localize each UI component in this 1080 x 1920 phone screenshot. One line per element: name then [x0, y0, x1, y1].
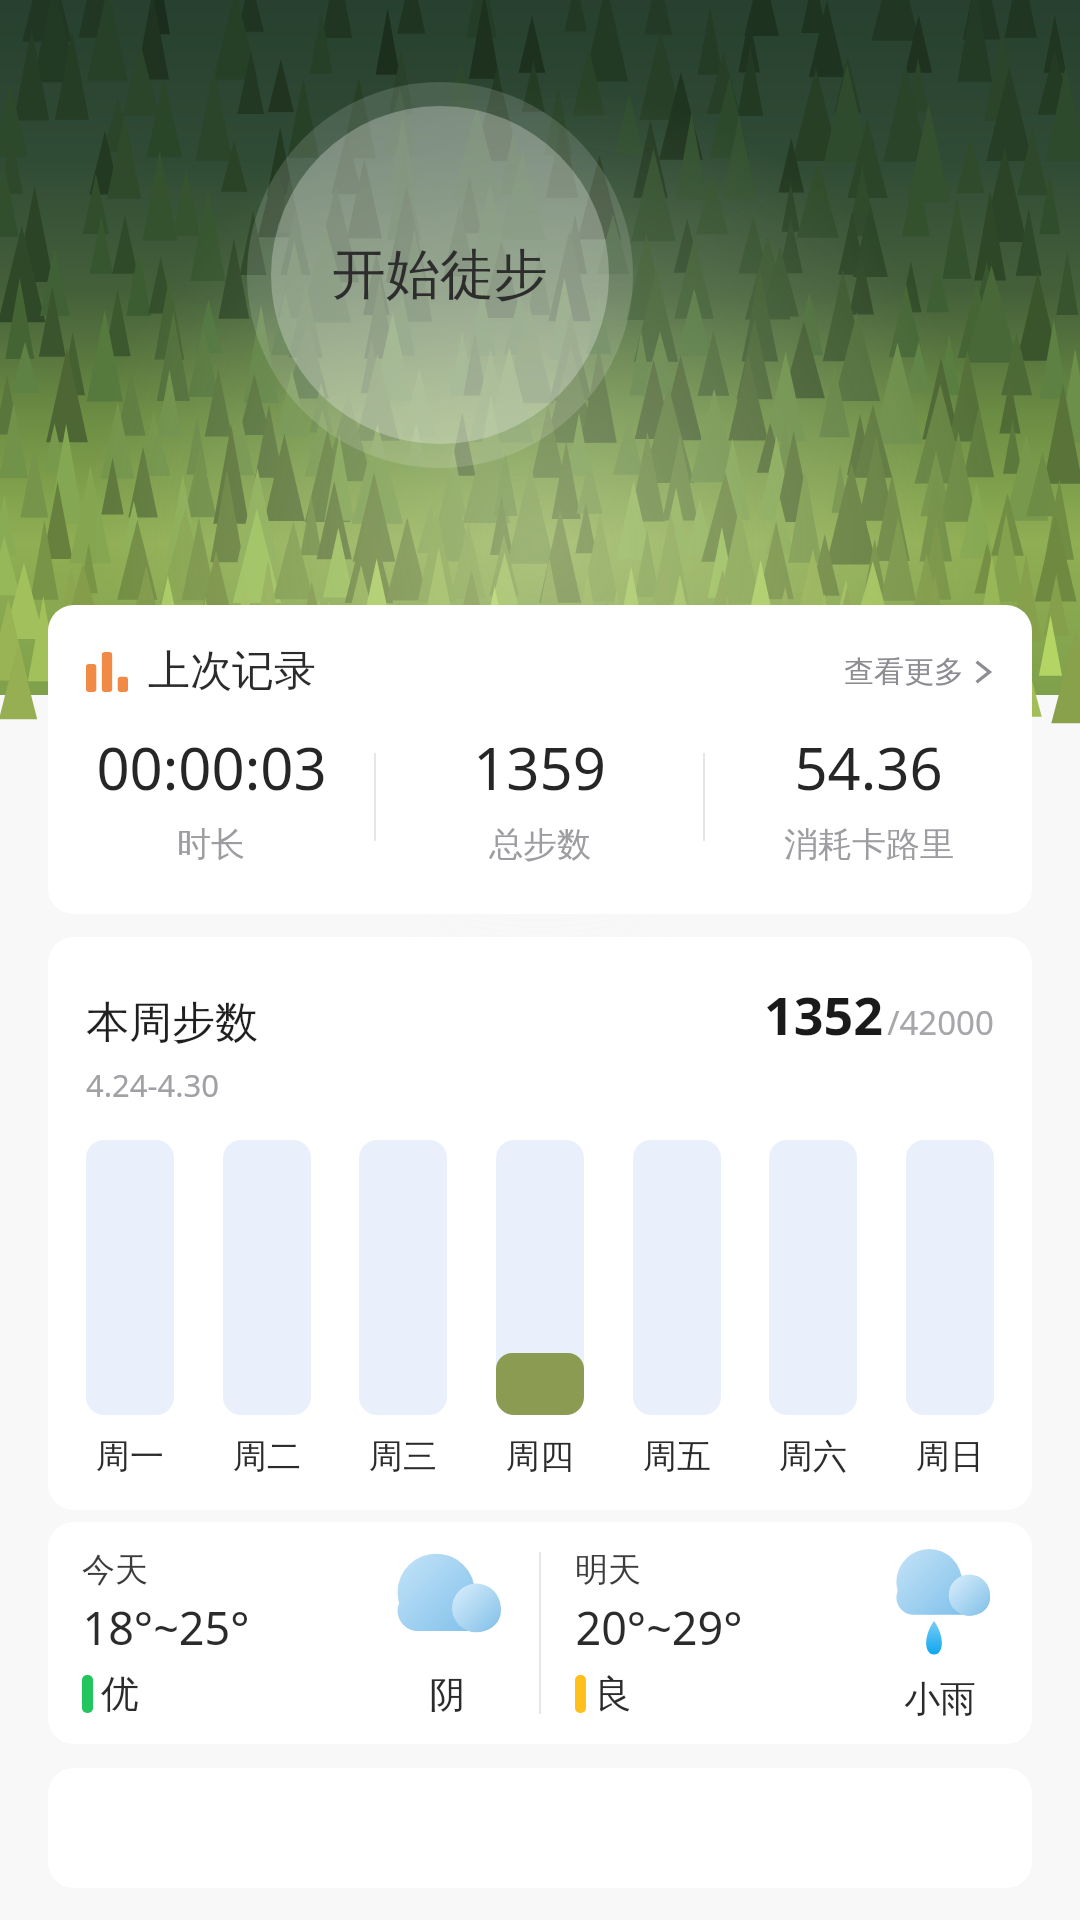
- staticText: 4.24-4.30: [86, 1064, 219, 1106]
- staticText: 20°~29°: [575, 1597, 743, 1658]
- staticText: 周日: [916, 1435, 984, 1478]
- staticText: 查看更多: [844, 653, 964, 691]
- staticText: 阴: [429, 1672, 465, 1717]
- staticText: 上次记录: [148, 645, 316, 698]
- staticText: 周六: [779, 1435, 847, 1478]
- staticText: 周三: [369, 1435, 437, 1478]
- staticText: 18°~25°: [82, 1597, 250, 1658]
- staticText: 消耗卡路里: [784, 823, 954, 866]
- staticText: 小雨: [904, 1676, 976, 1721]
- button[interactable]: 查看更多: [840, 647, 996, 697]
- staticText: /42000: [887, 1000, 994, 1045]
- staticText: 开始徒步: [332, 241, 548, 309]
- staticText: 本周步数: [86, 996, 258, 1050]
- staticText: 周二: [233, 1435, 301, 1478]
- button[interactable]: 明天: [541, 1522, 1032, 1744]
- staticText: 00:00:03: [96, 728, 327, 807]
- staticText: 今天: [82, 1549, 148, 1591]
- staticText: 54.36: [794, 728, 943, 807]
- staticText: 1359: [473, 728, 606, 807]
- staticText: 周四: [506, 1435, 574, 1478]
- staticText: 时长: [177, 823, 245, 866]
- other: 阴: [387, 1550, 507, 1642]
- staticText: 周一: [96, 1435, 164, 1478]
- button[interactable]: 开始徒步: [247, 82, 633, 468]
- staticText: 优: [101, 1670, 139, 1718]
- staticText: 1352: [764, 979, 883, 1050]
- staticText: 明天: [575, 1549, 641, 1591]
- other: 小雨: [880, 1546, 1000, 1670]
- button[interactable]: 今天: [48, 1522, 539, 1744]
- staticText: 周五: [643, 1435, 711, 1478]
- staticText: 总步数: [489, 823, 591, 866]
- button[interactable]: 本周步数: [48, 937, 1032, 1510]
- staticText: 良: [594, 1670, 632, 1718]
